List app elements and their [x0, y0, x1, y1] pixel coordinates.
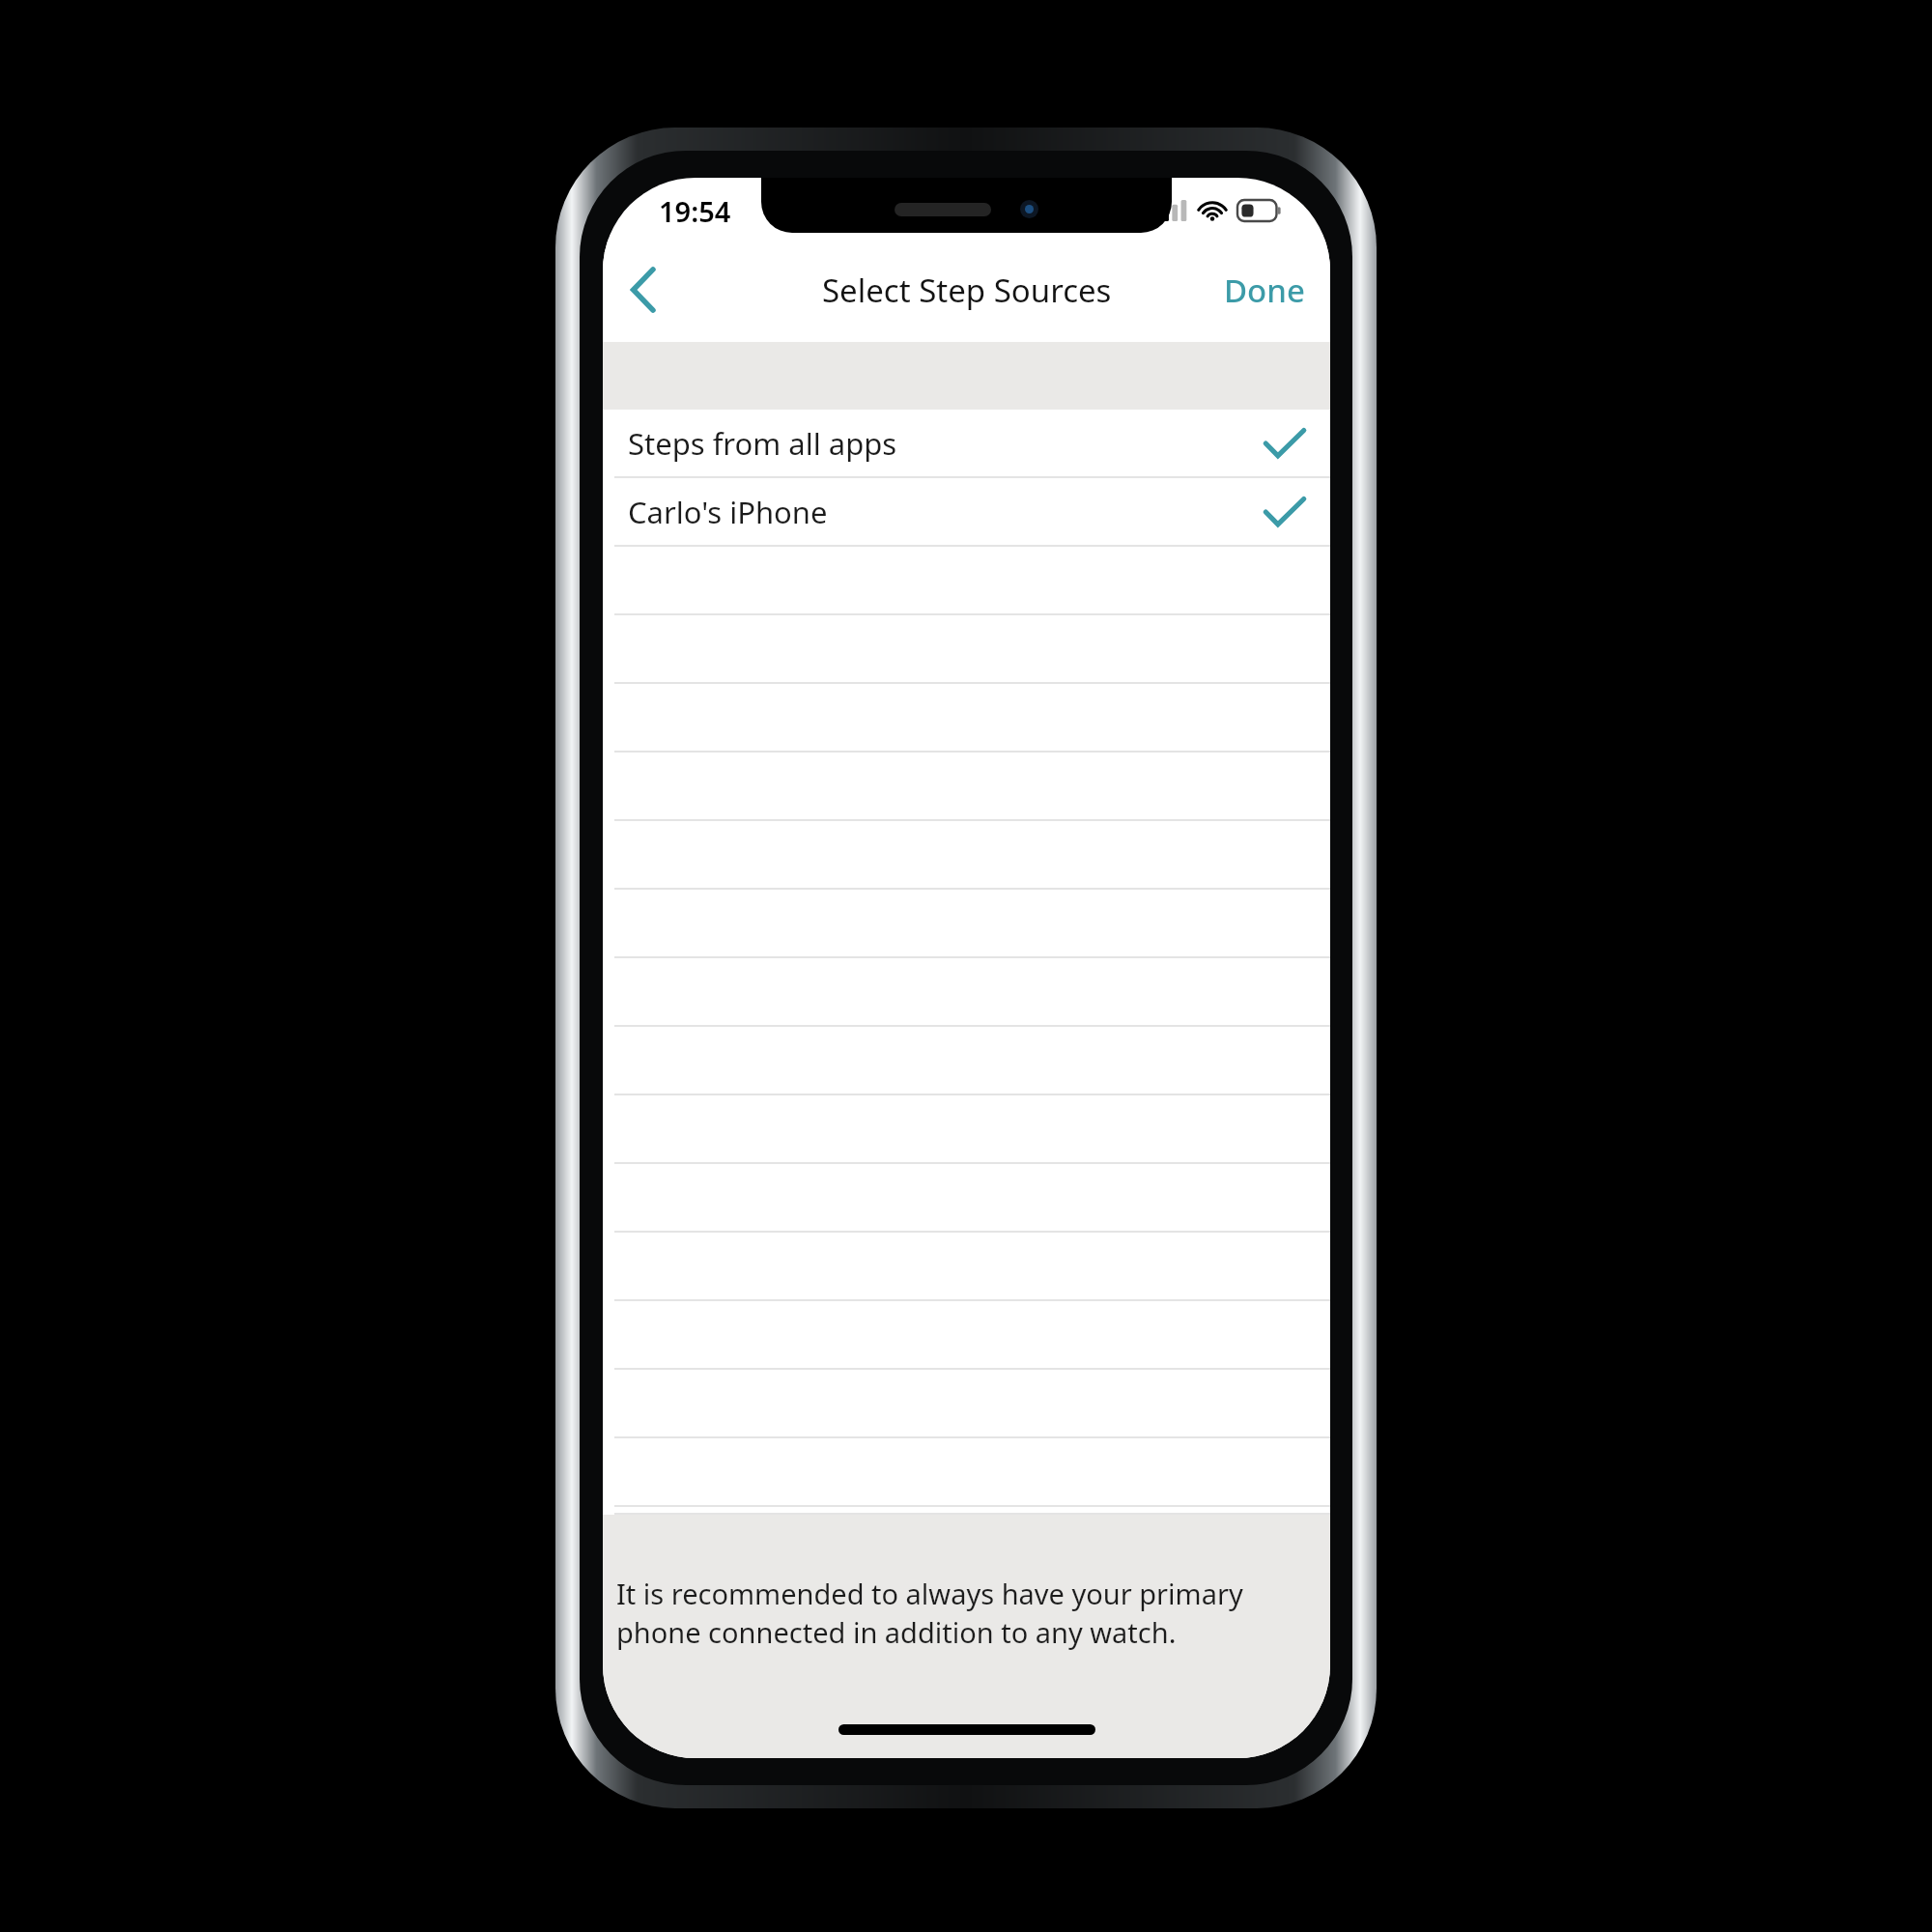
button[interactable]: Carlo's iPhone	[603, 478, 1330, 547]
button[interactable]: Done	[1199, 251, 1330, 329]
staticText: Select Step Sources	[822, 269, 1112, 312]
staticText: Done	[1224, 269, 1305, 312]
staticText: It is recommended to always have your pr…	[616, 1575, 1297, 1652]
button[interactable]: Back	[603, 248, 686, 331]
button[interactable]: Steps from all apps	[603, 410, 1330, 478]
staticText: 19:54	[659, 192, 731, 230]
staticText: Steps from all apps	[628, 423, 897, 464]
staticText: Carlo's iPhone	[628, 492, 828, 532]
